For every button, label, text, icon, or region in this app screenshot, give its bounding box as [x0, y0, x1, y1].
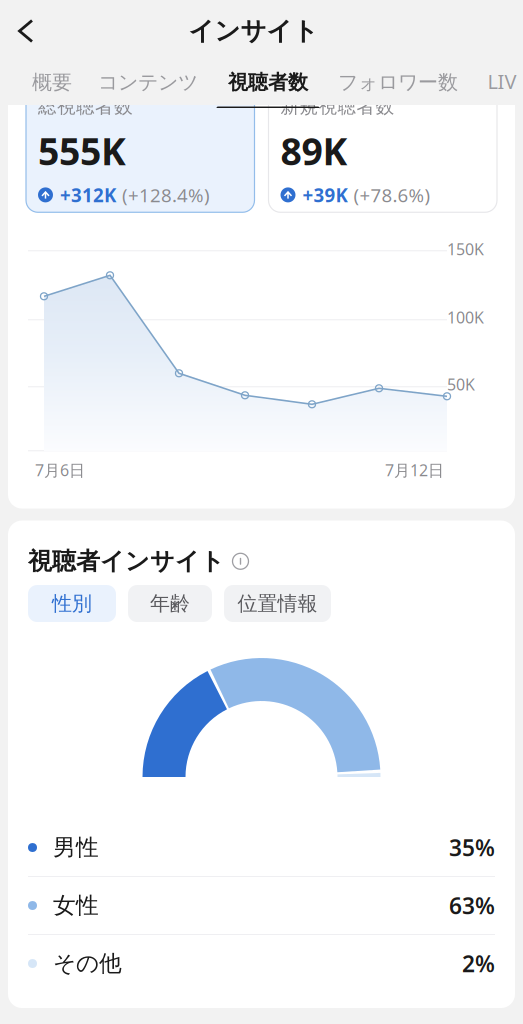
staticText: 7月12日	[385, 459, 444, 480]
staticText: 35%	[449, 832, 495, 863]
button[interactable]: Back	[0, 9, 45, 53]
staticText: 89K	[280, 126, 347, 175]
button[interactable]: 性別	[28, 585, 116, 622]
staticText: 50K	[447, 374, 475, 395]
staticText: LIV	[487, 68, 516, 95]
button[interactable]: 総視聴者数	[26, 86, 254, 212]
staticText: 150K	[447, 238, 484, 259]
button[interactable]: 概要	[20, 70, 84, 110]
staticText: 555K	[38, 126, 126, 175]
staticText: 2%	[462, 948, 495, 979]
staticText: 年齢	[150, 591, 190, 616]
button[interactable]: 新規視聴者数	[268, 86, 497, 212]
staticText: 新規視聴者数	[280, 95, 394, 118]
staticText: +39K	[302, 182, 347, 207]
staticText: 性別	[52, 591, 92, 616]
staticText: (+78.6%)	[353, 182, 430, 207]
staticText: フォロワー数	[338, 70, 458, 95]
button[interactable]: コンテンツ	[84, 70, 212, 110]
button[interactable]: 年齢	[128, 585, 212, 622]
staticText: 視聴者数	[228, 70, 308, 95]
button[interactable]: フォロワー数	[324, 70, 472, 110]
staticText: コンテンツ	[98, 70, 198, 95]
button[interactable]: 位置情報	[224, 585, 331, 622]
staticText: (+128.4%)	[122, 182, 210, 207]
staticText: 100K	[447, 306, 484, 328]
staticText: 女性	[53, 892, 99, 919]
staticText: その他	[53, 950, 122, 977]
staticText: 視聴者インサイト	[28, 546, 225, 576]
staticText: 概要	[32, 70, 72, 95]
staticText: 総視聴者数	[38, 95, 133, 118]
staticText: 63%	[449, 890, 495, 921]
staticText: 男性	[53, 834, 99, 861]
staticText: 7月6日	[35, 459, 85, 480]
staticText: 位置情報	[237, 591, 317, 616]
staticText: +312K	[60, 182, 116, 207]
button[interactable]: 視聴者数	[212, 70, 324, 110]
button[interactable]: LIV	[472, 68, 523, 110]
staticText: インサイト	[188, 15, 318, 46]
